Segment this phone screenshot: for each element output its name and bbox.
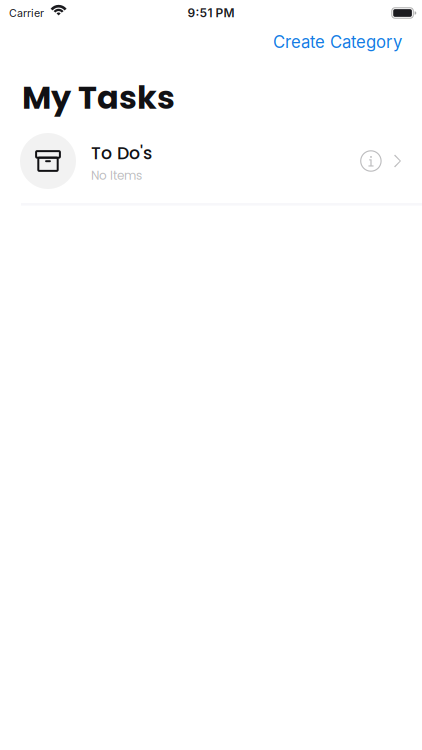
staticText: My Tasks [22, 75, 175, 120]
staticText: 9:51 PM [187, 6, 234, 20]
staticText: Create Category [273, 32, 402, 52]
staticText: To Do's [91, 141, 152, 165]
staticText: No Items [91, 167, 142, 184]
button[interactable]: To Do's [0, 126, 422, 206]
button[interactable]: Create Category [265, 27, 408, 68]
staticText: Carrier [9, 6, 44, 19]
